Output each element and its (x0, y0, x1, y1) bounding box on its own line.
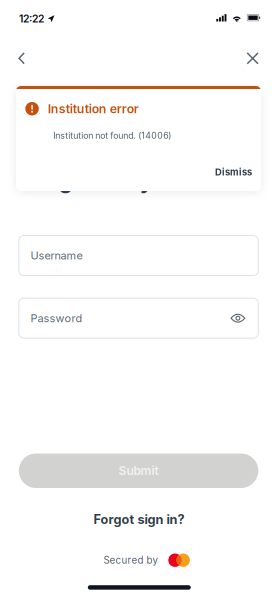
button[interactable]: Show password (224, 306, 251, 330)
staticText: Username (31, 249, 83, 262)
staticText: Institution not found. (14006) (53, 130, 171, 141)
staticText: Institution error (48, 101, 139, 116)
button[interactable]: Submit (19, 453, 258, 488)
staticText: Dismiss (215, 166, 252, 178)
staticText: 12:22 (19, 12, 44, 25)
staticText: Sign in to your bank (39, 169, 243, 194)
staticText: Password (31, 312, 83, 325)
staticText: Secured by (104, 554, 158, 566)
button[interactable]: Back (9, 43, 34, 73)
button[interactable]: Forgot sign in? (84, 509, 194, 529)
staticText: Submit (118, 463, 158, 478)
staticText: Forgot sign in? (93, 512, 184, 527)
button[interactable]: Dismiss (200, 162, 252, 182)
button[interactable]: Close (237, 43, 268, 73)
